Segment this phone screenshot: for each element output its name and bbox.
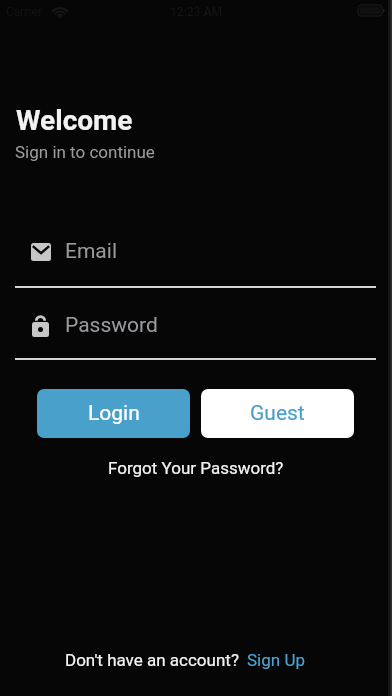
staticText: Sign in to continue (15, 142, 155, 162)
staticText: Sign Up (247, 650, 305, 670)
staticText: Don't have an account? (65, 650, 239, 670)
button[interactable]: Password (15, 304, 376, 360)
staticText: Password (65, 313, 158, 338)
staticText: 12:23 AM (170, 5, 222, 19)
staticText: Carrier (6, 5, 42, 19)
button[interactable]: Login (37, 389, 190, 438)
button[interactable]: Email (15, 232, 376, 288)
button[interactable]: Forgot Your Password? (108, 458, 284, 478)
staticText: Email (65, 239, 117, 264)
staticText: Guest (250, 401, 305, 426)
button[interactable]: Guest (201, 389, 354, 438)
staticText: Login (88, 401, 140, 426)
staticText: Forgot Your Password? (108, 458, 284, 478)
staticText: Welcome (16, 104, 133, 137)
button[interactable]: Sign Up (247, 650, 305, 670)
